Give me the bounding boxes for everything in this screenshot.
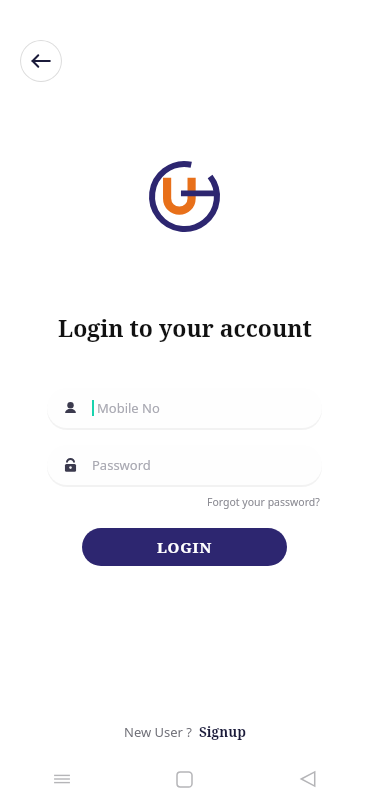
button[interactable]: Back — [246, 762, 369, 796]
staticText: Mobile No — [97, 399, 160, 417]
staticText: Password — [92, 456, 151, 474]
staticText: Login to your account — [58, 312, 312, 343]
staticText: New User ? — [124, 723, 193, 741]
staticText: LOGIN — [157, 537, 213, 557]
button[interactable]: Password — [47, 445, 322, 485]
button[interactable]: Signup — [199, 723, 246, 741]
button[interactable]: LOGIN — [82, 528, 287, 566]
staticText: Forgot your password? — [207, 495, 320, 509]
staticText: Signup — [199, 723, 246, 741]
button[interactable]: Forgot your password? — [205, 493, 322, 511]
button[interactable]: Back — [20, 40, 62, 82]
button[interactable]: Recent apps — [0, 762, 123, 796]
button[interactable]: Home — [123, 762, 246, 796]
button[interactable]: Mobile No — [47, 388, 322, 428]
